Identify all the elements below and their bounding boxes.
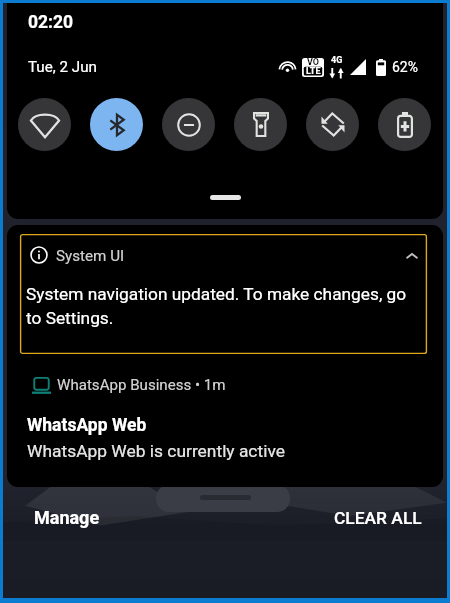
button[interactable]: Flashlight [234, 98, 287, 151]
button[interactable]: Auto rotate [306, 98, 359, 151]
button[interactable]: CLEAR ALL [334, 508, 422, 528]
staticText: WhatsApp Business • 1m [57, 376, 226, 394]
button[interactable]: WhatsApp Business • 1m [7, 370, 443, 391]
staticText: VO [307, 57, 320, 68]
button[interactable]: Battery saver [378, 98, 431, 151]
staticText: 02:20 [28, 12, 74, 33]
staticText: 4G [331, 55, 343, 66]
button[interactable]: System UI [20, 234, 427, 354]
staticText: System navigation updated. To make chang… [26, 284, 412, 328]
staticText: WhatsApp Web [27, 415, 147, 436]
other: Collapse [405, 249, 419, 263]
button[interactable]: Bluetooth [90, 98, 143, 151]
staticText: LTE [306, 66, 321, 77]
button[interactable]: Do not disturb [162, 98, 215, 151]
staticText: Tue, 2 Jun [28, 58, 97, 76]
staticText: System UI [56, 247, 125, 265]
staticText: 62% [392, 59, 418, 75]
button[interactable]: Manage [34, 507, 100, 528]
button[interactable]: Wi-Fi [18, 98, 71, 151]
staticText: WhatsApp Web is currently active [27, 441, 285, 461]
